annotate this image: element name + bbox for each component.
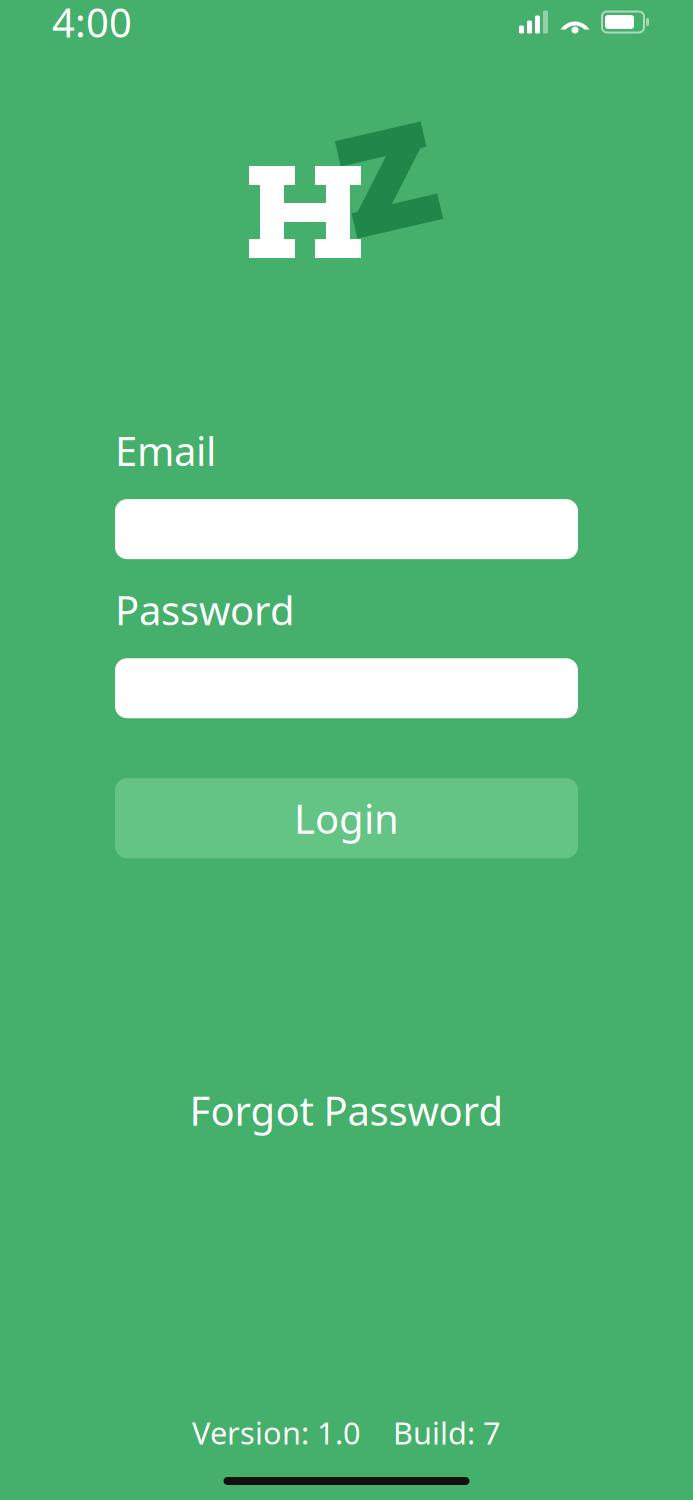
staticText: Password: [115, 583, 295, 636]
button[interactable]: Login: [115, 778, 578, 858]
staticText: Email: [115, 424, 216, 477]
staticText: Forgot Password: [189, 1084, 503, 1137]
staticText: 4:00: [52, 0, 132, 48]
staticText: Build: 7: [393, 1412, 501, 1453]
staticText: Version: 1.0: [192, 1412, 361, 1453]
staticText: Login: [294, 792, 399, 845]
button[interactable]: Forgot Password: [0, 1086, 693, 1134]
